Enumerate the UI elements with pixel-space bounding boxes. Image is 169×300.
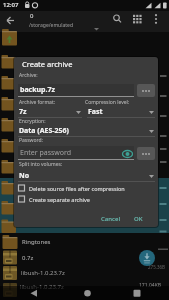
staticText: Create separate archive	[29, 196, 90, 203]
button[interactable]	[137, 84, 155, 97]
button[interactable]: Data (AES-256)	[18, 125, 155, 137]
staticText: Fast	[88, 107, 103, 117]
staticText: Data (AES-256)	[19, 126, 69, 136]
staticText: Archive:	[19, 72, 38, 79]
button[interactable]	[18, 146, 134, 160]
button[interactable]	[139, 250, 155, 266]
staticText: 275.36B	[148, 264, 166, 270]
button[interactable]	[24, 286, 42, 300]
button[interactable]	[121, 149, 134, 160]
staticText: Split into volumes:	[19, 161, 63, 168]
staticText: 171.04KB	[139, 282, 161, 289]
staticText: No	[19, 171, 30, 181]
staticText: 0	[30, 12, 34, 20]
button[interactable]: No	[18, 170, 155, 182]
staticText: OK	[134, 215, 143, 223]
staticText: Ringtones	[22, 238, 51, 246]
staticText: Password:	[19, 137, 43, 144]
staticText: /storage/emulated	[29, 22, 73, 29]
button[interactable]: Cancel	[97, 213, 125, 225]
button[interactable]: Delete source files after compression	[17, 183, 155, 193]
button[interactable]	[128, 286, 145, 300]
button[interactable]	[79, 286, 96, 300]
button[interactable]: 7z	[18, 106, 82, 118]
staticText: Cancel	[101, 215, 121, 223]
button[interactable]: Fast	[87, 106, 155, 118]
staticText: 12:07	[3, 1, 19, 9]
button[interactable]	[130, 12, 145, 27]
staticText: Archive format:	[19, 99, 56, 106]
button[interactable]	[137, 147, 155, 160]
button[interactable]	[110, 12, 125, 27]
button[interactable]	[18, 84, 134, 97]
button[interactable]	[150, 12, 163, 27]
staticText: Delete source files after compression	[29, 185, 125, 192]
staticText: backup.7z	[20, 85, 55, 95]
button[interactable]: Create separate archive	[17, 194, 155, 204]
staticText: libush-1.0.23.7z	[21, 269, 65, 277]
staticText: Enter password	[20, 148, 72, 158]
staticText: 7z	[19, 107, 27, 117]
staticText: 0.7z	[22, 254, 34, 262]
button[interactable]: OK	[128, 213, 148, 225]
staticText: libush-1.0.23.7z	[20, 283, 64, 291]
button[interactable]	[3, 13, 18, 28]
staticText: Encryption:	[19, 118, 46, 125]
staticText: Create archive	[22, 59, 73, 69]
staticText: Compression level:	[85, 99, 130, 106]
